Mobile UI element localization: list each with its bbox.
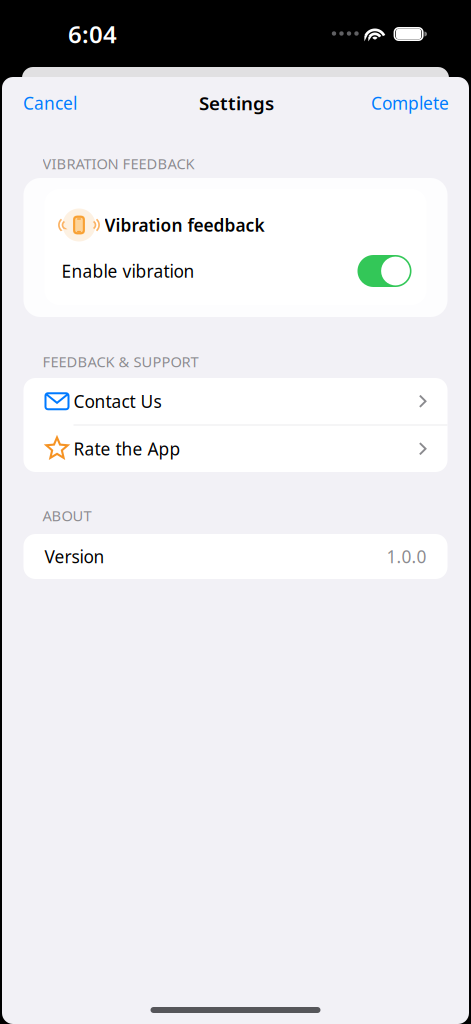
staticText: Complete: [371, 91, 449, 114]
staticText: Contact Us: [73, 390, 161, 413]
staticText: 1.0.0: [386, 545, 426, 568]
button[interactable]: Contact Us: [23, 378, 447, 424]
staticText: Settings: [199, 91, 274, 115]
button[interactable]: Cancel: [2, 80, 91, 126]
button[interactable]: Rate the App: [23, 425, 447, 472]
staticText: ABOUT: [42, 506, 91, 525]
staticText: FEEDBACK & SUPPORT: [42, 352, 198, 371]
staticText: Enable vibration: [61, 259, 194, 282]
staticText: Rate the App: [73, 437, 180, 460]
staticText: 6:04: [68, 18, 117, 50]
button[interactable]: Complete: [357, 80, 469, 126]
button[interactable]: Enable vibration: [357, 255, 411, 287]
staticText: Vibration feedback: [104, 213, 264, 236]
staticText: Version: [44, 545, 104, 568]
staticText: Cancel: [23, 91, 77, 114]
staticText: VIBRATION FEEDBACK: [42, 154, 194, 173]
